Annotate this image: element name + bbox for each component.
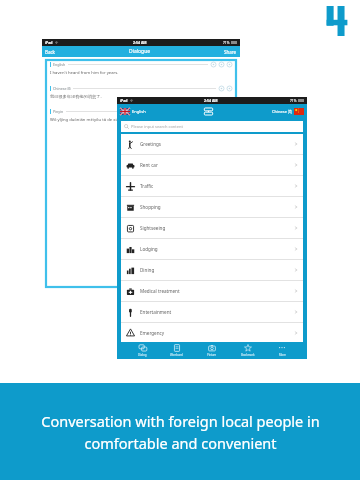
- staticText: 71%: [290, 99, 297, 103]
- button[interactable]: Back: [42, 49, 59, 55]
- staticText: Wǒ yǐjīng duōnián méiyǒu tā de xiāoxi le: [50, 117, 130, 123]
- staticText: Dining: [140, 267, 155, 273]
- staticText: 2:54 AM: [133, 40, 147, 45]
- button[interactable]: Share: [221, 49, 240, 55]
- button[interactable]: Swap languages: [203, 106, 214, 117]
- staticText: Lodging: [140, 246, 158, 252]
- staticText: Dialogue: [129, 48, 151, 55]
- staticText: Picture: [207, 353, 217, 357]
- staticText: Share: [224, 49, 237, 55]
- button[interactable]: Traffic: [121, 176, 303, 196]
- staticText: Entertainment: [140, 309, 172, 315]
- staticText: Conversation with foreign local people i…: [41, 411, 320, 431]
- staticText: Rent car: [140, 162, 158, 168]
- staticText: Traffic: [140, 183, 154, 189]
- staticText: 71%: [223, 41, 230, 45]
- staticText: English: [53, 62, 66, 67]
- button[interactable]: Wordcard: [167, 344, 186, 357]
- button[interactable]: [211, 62, 216, 67]
- staticText: Dialog: [138, 353, 147, 357]
- button[interactable]: Bookmark: [238, 344, 258, 357]
- staticText: Please input search content: [131, 124, 183, 129]
- button[interactable]: Dialog: [135, 344, 150, 357]
- button[interactable]: [219, 86, 224, 91]
- staticText: I haven't heard from him for years.: [50, 70, 119, 76]
- staticText: iPad: [45, 40, 53, 45]
- staticText: 2:54 AM: [204, 98, 218, 103]
- button[interactable]: Emergency: [121, 323, 303, 342]
- staticText: Bookmark: [241, 353, 255, 357]
- staticText: Pinyin: [53, 109, 64, 114]
- staticText: Sightseeing: [140, 225, 166, 231]
- staticText: Chinese 简: [53, 86, 71, 91]
- button[interactable]: Greetings: [121, 134, 303, 154]
- button[interactable]: English: [120, 108, 146, 115]
- staticText: comfortable and convenient: [84, 433, 277, 453]
- staticText: Chinese 简: [272, 109, 292, 114]
- button[interactable]: Please input search content: [121, 121, 303, 132]
- button[interactable]: More: [275, 344, 289, 357]
- staticText: Back: [45, 49, 56, 55]
- button[interactable]: Medical treatment: [121, 281, 303, 301]
- button[interactable]: Shopping: [121, 197, 303, 217]
- staticText: 我已很多年没有他的消息了。: [50, 94, 105, 99]
- staticText: Shopping: [140, 204, 161, 210]
- button[interactable]: Entertainment: [121, 302, 303, 322]
- staticText: More: [279, 353, 286, 357]
- button[interactable]: [227, 62, 232, 67]
- staticText: Greetings: [140, 141, 162, 147]
- button[interactable]: Lodging: [121, 239, 303, 259]
- staticText: English: [132, 109, 146, 114]
- button[interactable]: [227, 86, 232, 91]
- button[interactable]: [219, 62, 224, 67]
- button[interactable]: Sightseeing: [121, 218, 303, 238]
- button[interactable]: Dining: [121, 260, 303, 280]
- staticText: iPad: [120, 98, 128, 103]
- button[interactable]: Chinese 简: [272, 108, 304, 115]
- staticText: Medical treatment: [140, 288, 180, 294]
- button[interactable]: Rent car: [121, 155, 303, 175]
- staticText: Wordcard: [170, 353, 183, 357]
- button[interactable]: Picture: [204, 344, 220, 357]
- staticText: Emergency: [140, 330, 165, 336]
